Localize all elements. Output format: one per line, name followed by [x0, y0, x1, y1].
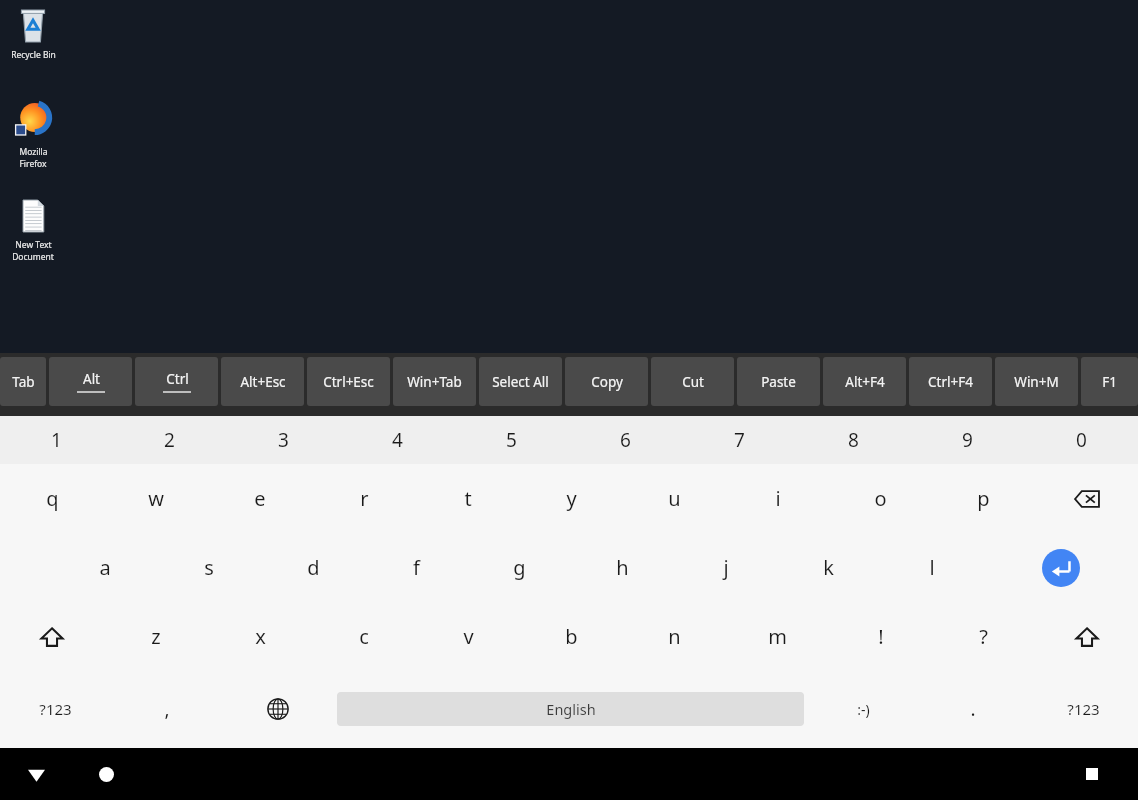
button[interactable]: :-): [808, 671, 918, 747]
button[interactable]: Alt+Esc: [221, 357, 304, 406]
button[interactable]: c: [312, 602, 416, 671]
staticText: !: [878, 623, 884, 650]
button[interactable]: k: [777, 533, 880, 602]
button[interactable]: Backspace: [1035, 464, 1138, 533]
staticText: r: [360, 485, 369, 512]
staticText: Win+M: [1014, 373, 1059, 391]
staticText: y: [566, 485, 577, 512]
button[interactable]: Copy: [565, 357, 648, 406]
button[interactable]: Win+Tab: [393, 357, 476, 406]
button[interactable]: 2: [113, 416, 226, 464]
button[interactable]: y: [520, 464, 623, 533]
button[interactable]: English: [337, 692, 804, 726]
button[interactable]: Shift: [0, 602, 104, 671]
staticText: b: [565, 623, 578, 650]
button[interactable]: 5: [454, 416, 568, 464]
staticText: ?: [979, 623, 988, 650]
staticText: h: [616, 554, 629, 581]
button[interactable]: Tab: [0, 357, 46, 406]
button[interactable]: v: [416, 602, 520, 671]
button[interactable]: Select All: [479, 357, 562, 406]
button[interactable]: 3: [226, 416, 340, 464]
button[interactable]: Recent apps: [1064, 748, 1120, 800]
button[interactable]: 9: [910, 416, 1024, 464]
button[interactable]: g: [468, 533, 571, 602]
button[interactable]: ?123: [1028, 671, 1138, 747]
staticText: Recycle Bin: [11, 49, 56, 61]
button[interactable]: m: [726, 602, 829, 671]
button[interactable]: Ctrl+F4: [909, 357, 992, 406]
button[interactable]: a: [53, 533, 157, 602]
button[interactable]: h: [571, 533, 674, 602]
button[interactable]: e: [208, 464, 312, 533]
button[interactable]: q: [0, 464, 104, 533]
button[interactable]: !: [829, 602, 932, 671]
button[interactable]: i: [726, 464, 829, 533]
staticText: Ctrl: [166, 370, 189, 388]
button[interactable]: 8: [796, 416, 910, 464]
button[interactable]: d: [261, 533, 365, 602]
button[interactable]: x: [208, 602, 312, 671]
button[interactable]: t: [416, 464, 520, 533]
button[interactable]: Hide keyboard: [8, 748, 64, 800]
staticText: Copy: [591, 373, 623, 391]
staticText: ?123: [39, 699, 72, 719]
staticText: Paste: [761, 373, 796, 391]
button[interactable]: Ctrl+Esc: [307, 357, 390, 406]
button[interactable]: r: [312, 464, 416, 533]
staticText: 1: [51, 427, 62, 453]
button[interactable]: Alt: [49, 357, 132, 406]
button[interactable]: p: [932, 464, 1035, 533]
button[interactable]: l: [880, 533, 983, 602]
staticText: Firefox: [19, 158, 47, 170]
button[interactable]: Enter: [983, 533, 1138, 602]
button[interactable]: 4: [340, 416, 454, 464]
button[interactable]: 7: [682, 416, 796, 464]
staticText: 9: [962, 427, 973, 453]
button[interactable]: u: [623, 464, 726, 533]
button[interactable]: Shift: [1035, 602, 1138, 671]
button[interactable]: ?123: [0, 671, 111, 747]
button[interactable]: 1: [0, 416, 113, 464]
button[interactable]: Win+M: [995, 357, 1078, 406]
button[interactable]: n: [623, 602, 726, 671]
button[interactable]: Home: [78, 748, 134, 800]
button[interactable]: .: [918, 671, 1028, 747]
staticText: g: [513, 554, 526, 581]
staticText: l: [929, 554, 935, 581]
button[interactable]: s: [157, 533, 261, 602]
button[interactable]: F1: [1081, 357, 1138, 406]
button[interactable]: j: [674, 533, 777, 602]
button[interactable]: Mozilla: [0, 100, 66, 170]
staticText: w: [148, 485, 164, 512]
button[interactable]: z: [104, 602, 208, 671]
button[interactable]: b: [520, 602, 623, 671]
staticText: Win+Tab: [407, 373, 462, 391]
button[interactable]: 6: [568, 416, 682, 464]
button[interactable]: w: [104, 464, 208, 533]
staticText: n: [668, 623, 681, 650]
button[interactable]: Alt+F4: [823, 357, 906, 406]
button[interactable]: Cut: [651, 357, 734, 406]
staticText: t: [464, 485, 472, 512]
button[interactable]: Paste: [737, 357, 820, 406]
button[interactable]: Recycle Bin: [0, 6, 66, 61]
button[interactable]: Ctrl: [135, 357, 218, 406]
button[interactable]: f: [365, 533, 468, 602]
staticText: c: [359, 623, 369, 650]
staticText: j: [723, 554, 729, 581]
staticText: 3: [278, 427, 289, 453]
staticText: Cut: [682, 373, 704, 391]
button[interactable]: New Text: [0, 196, 66, 263]
staticText: q: [46, 485, 59, 512]
staticText: 4: [392, 427, 403, 453]
button[interactable]: Change language: [222, 671, 333, 747]
button[interactable]: 0: [1024, 416, 1138, 464]
staticText: s: [204, 554, 214, 581]
staticText: x: [255, 623, 266, 650]
button[interactable]: ,: [111, 671, 222, 747]
staticText: Alt+Esc: [240, 373, 286, 391]
button[interactable]: ?: [932, 602, 1035, 671]
button[interactable]: o: [829, 464, 932, 533]
staticText: 7: [734, 427, 745, 453]
